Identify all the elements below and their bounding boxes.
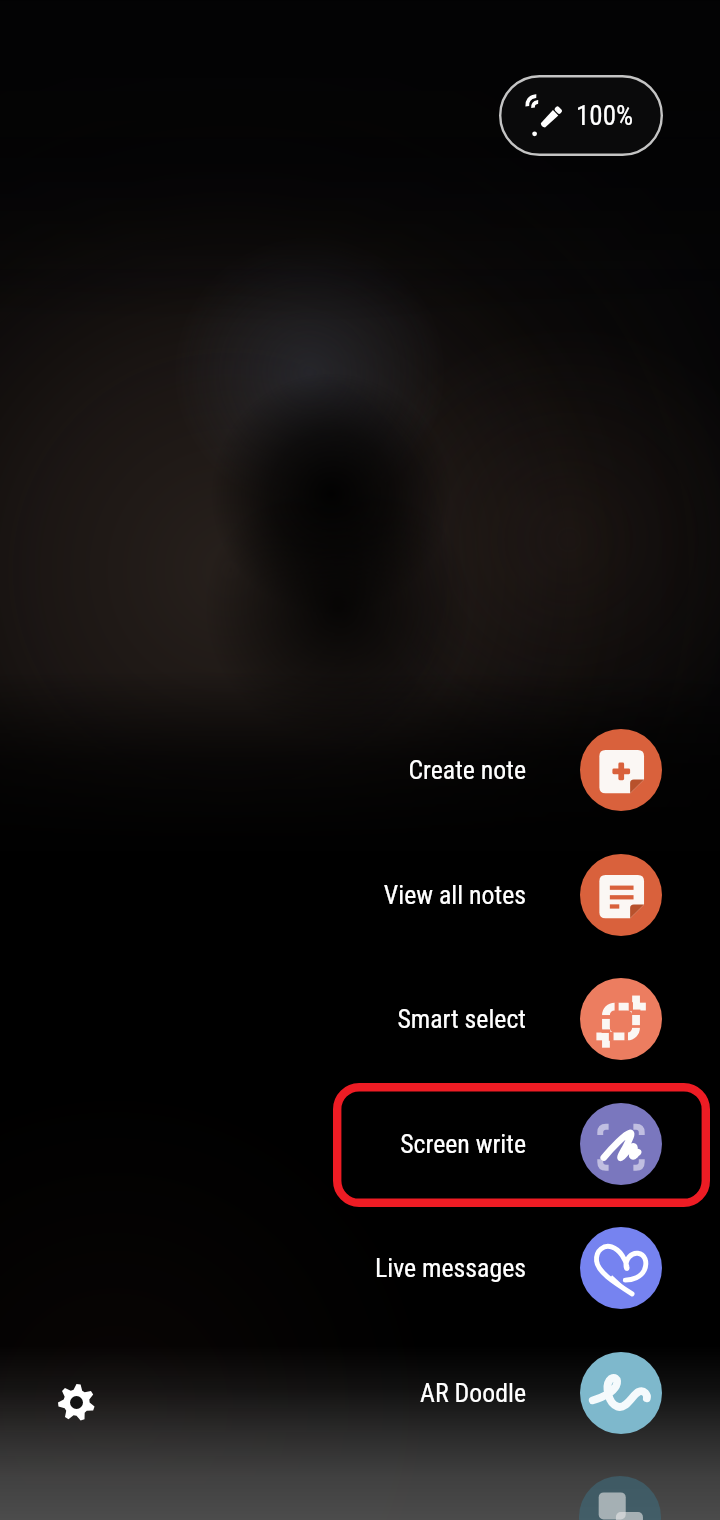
staticText: Screen write: [400, 1129, 526, 1159]
staticText: Create note: [408, 755, 526, 785]
staticText: Smart select: [397, 1004, 526, 1034]
button[interactable]: Create note: [260, 729, 662, 811]
button[interactable]: Live messages: [260, 1227, 662, 1309]
staticText: View all notes: [383, 880, 526, 910]
button[interactable]: Settings: [44, 1370, 108, 1434]
button[interactable]: Smart select: [260, 978, 662, 1060]
button[interactable]: Translate: [579, 1476, 661, 1520]
button[interactable]: View all notes: [260, 854, 662, 936]
button[interactable]: S Pen battery 100 percent: [499, 75, 663, 156]
staticText: 100%: [576, 100, 634, 132]
staticText: AR Doodle: [420, 1378, 526, 1408]
button[interactable]: Screen write: [260, 1103, 662, 1185]
staticText: Live messages: [374, 1253, 526, 1283]
button[interactable]: AR Doodle: [260, 1352, 662, 1434]
